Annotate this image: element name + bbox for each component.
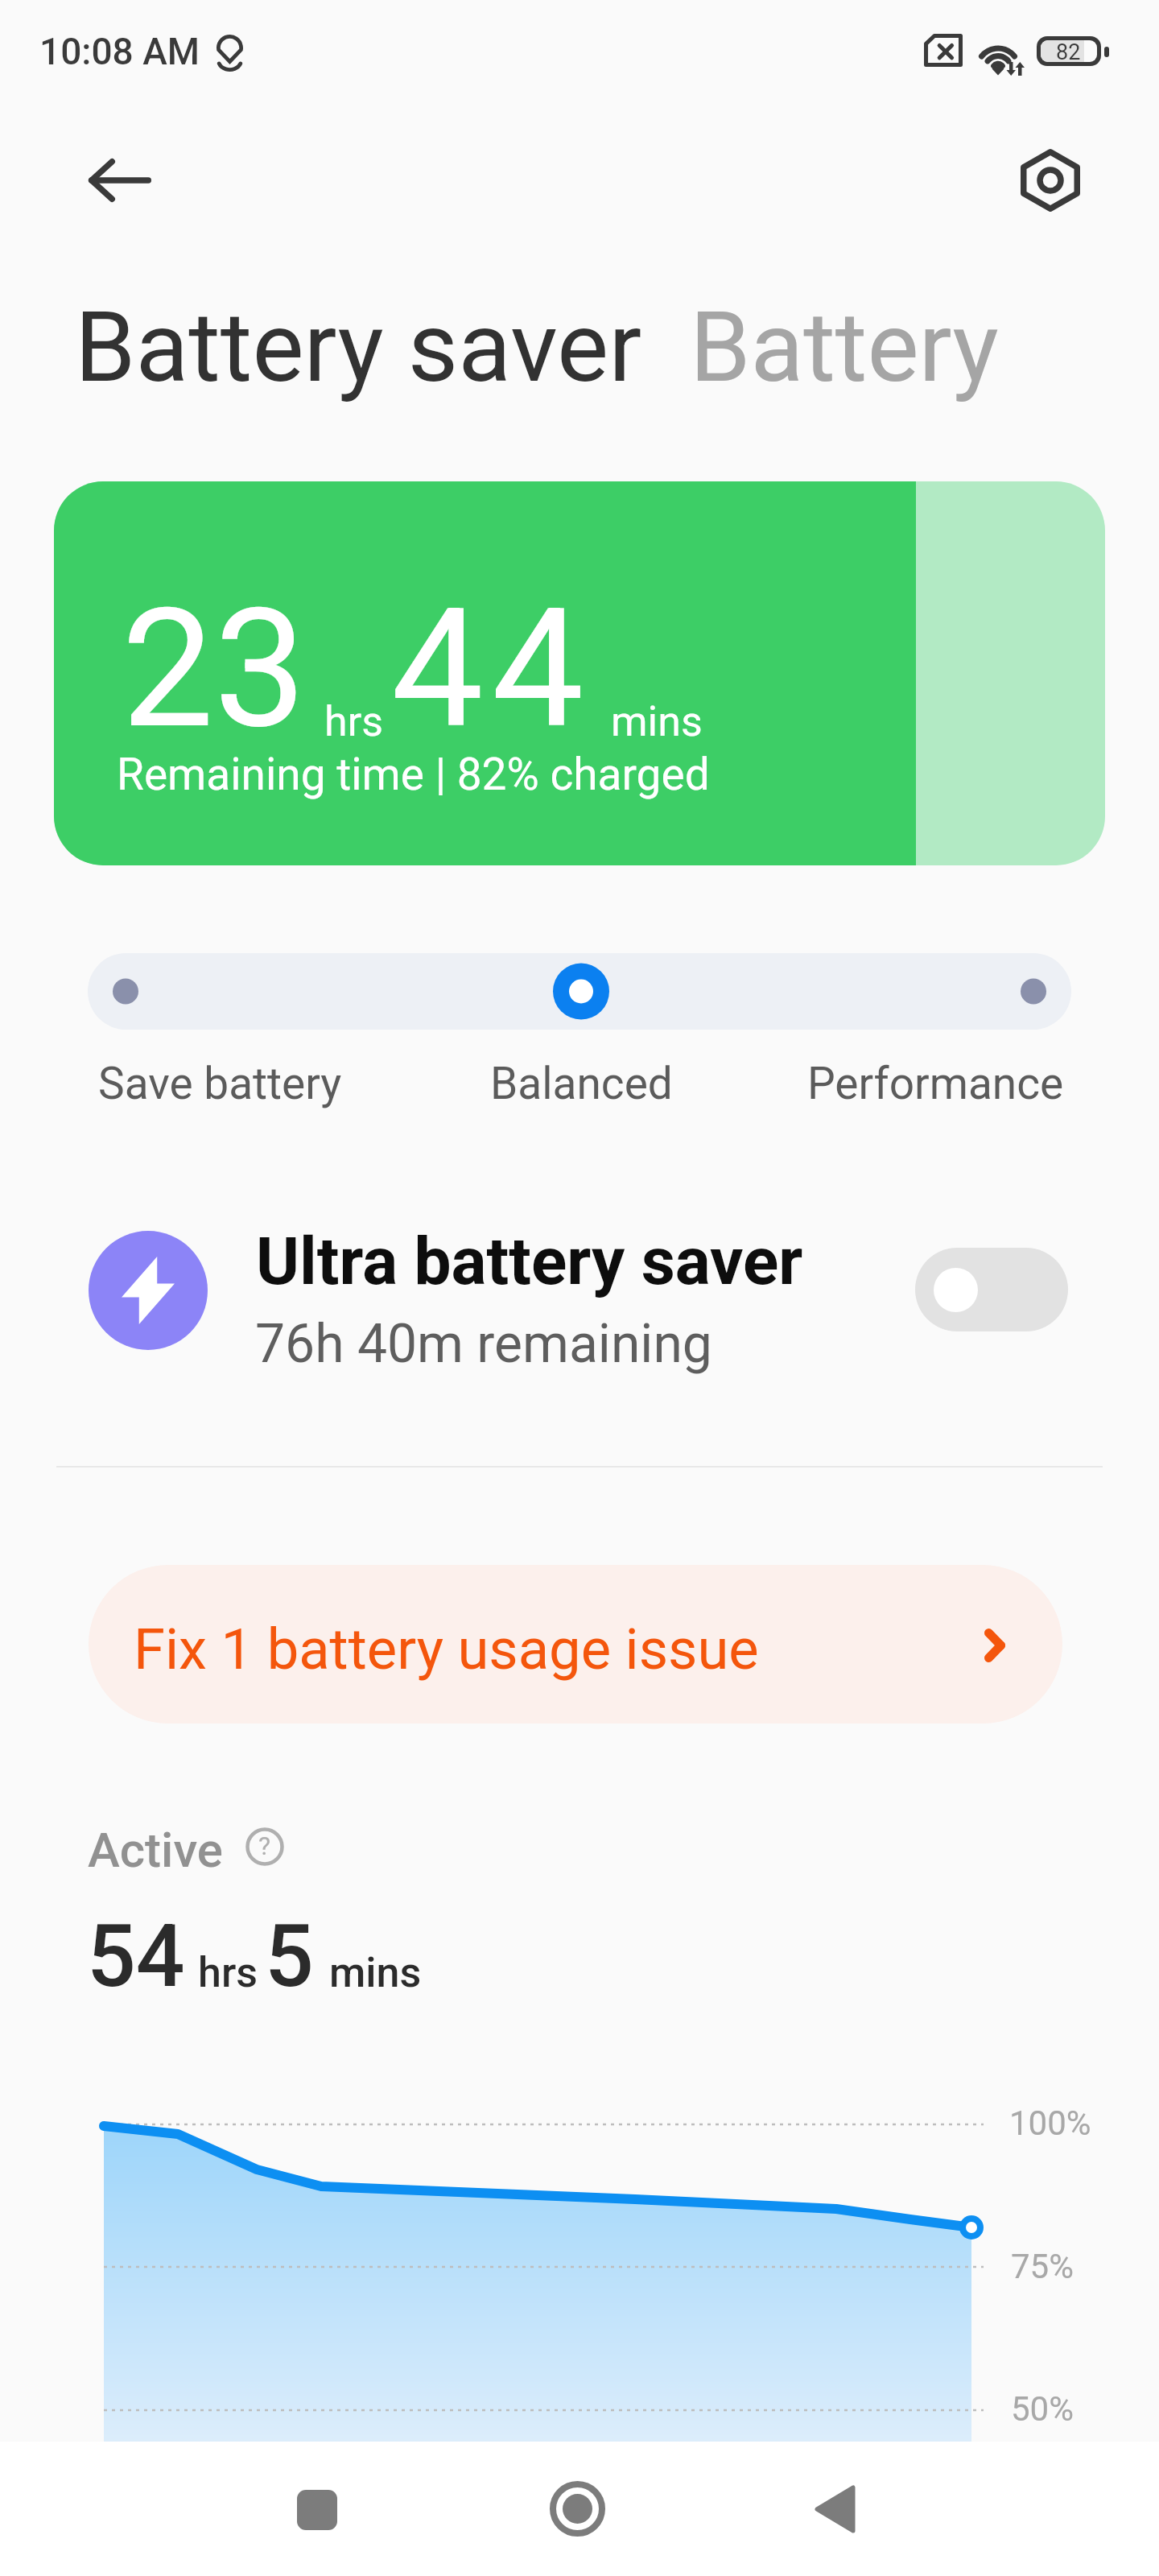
staticText: Remaining time | 82% charged	[117, 749, 710, 800]
staticText: Battery	[690, 291, 999, 405]
button[interactable]: Performance	[740, 1045, 1071, 1125]
button[interactable]: Back	[738, 2442, 931, 2576]
staticText: 44	[391, 573, 592, 766]
staticText: 5	[265, 1906, 314, 2007]
staticText: Ultra battery saver	[256, 1223, 803, 1300]
staticText: Active	[88, 1822, 223, 1878]
staticText: Balanced	[490, 1058, 673, 1109]
button[interactable]: Balanced	[418, 1045, 740, 1125]
button[interactable]: Recents	[221, 2442, 414, 2576]
staticText: 50%	[1011, 2389, 1074, 2429]
button[interactable]: 23	[54, 481, 1105, 865]
staticText: 10:08 AM	[39, 30, 200, 73]
staticText: Fix 1 battery usage issue	[134, 1616, 759, 1683]
staticText: 76h 40m remaining	[255, 1313, 712, 1375]
button[interactable]: Ultra battery saver toggle	[915, 1248, 1068, 1331]
staticText: mins	[611, 697, 703, 746]
staticText: 82	[1056, 40, 1081, 61]
staticText: Battery saver	[75, 291, 642, 405]
button[interactable]: Home	[481, 2442, 674, 2576]
button[interactable]: Battery	[690, 291, 999, 405]
staticText: Save battery	[98, 1058, 342, 1109]
staticText: 23	[122, 573, 307, 766]
button[interactable]: Performance mode slider	[88, 953, 1071, 1030]
button[interactable]: Fix 1 battery usage issue	[89, 1565, 1062, 1724]
staticText: 54	[87, 1906, 185, 2007]
button[interactable]: Save battery	[88, 1045, 418, 1125]
staticText: hrs	[198, 1948, 258, 1997]
button[interactable]: Back	[72, 132, 168, 229]
staticText: hrs	[324, 697, 384, 746]
button[interactable]: Battery saver	[75, 291, 642, 405]
button[interactable]: Settings	[1002, 132, 1099, 229]
staticText: 100%	[1009, 2103, 1091, 2143]
button[interactable]: Help	[245, 1827, 284, 1866]
button[interactable]: Ultra battery saver	[48, 1203, 1111, 1377]
staticText: 75%	[1011, 2247, 1074, 2286]
staticText: ?	[258, 1831, 271, 1861]
staticText: Performance	[807, 1058, 1064, 1109]
staticText: mins	[329, 1948, 422, 1997]
